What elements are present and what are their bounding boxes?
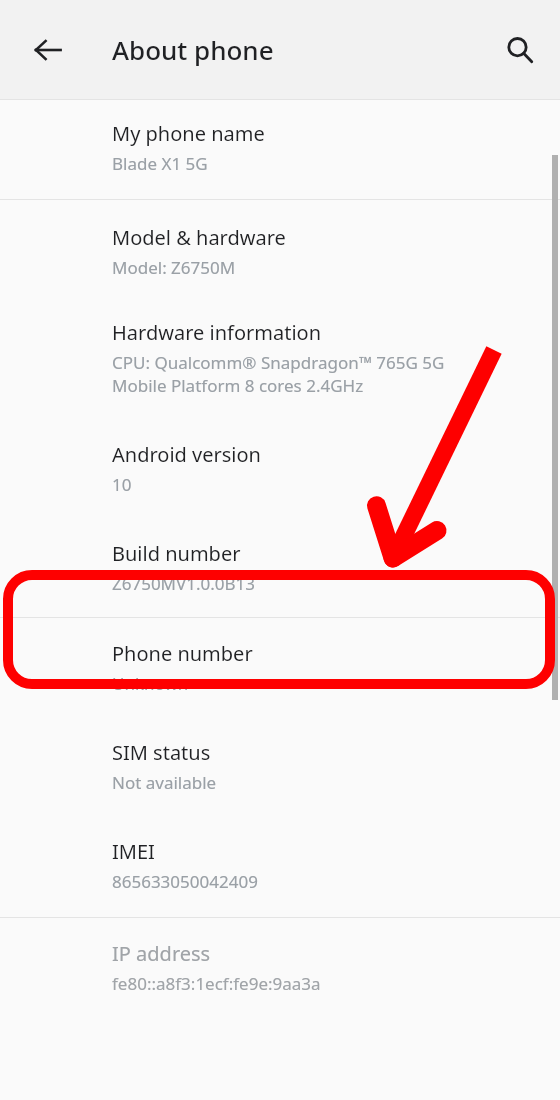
staticText: fe80::a8f3:1ecf:fe9e:9aa3a <box>112 972 321 995</box>
staticText: My phone name <box>112 120 265 147</box>
button[interactable]: Search <box>492 22 548 78</box>
staticText: CPU: Qualcomm® Snapdragon™ 765G 5G <box>112 351 445 374</box>
staticText: Phone number <box>112 640 253 667</box>
staticText: About phone <box>112 32 274 67</box>
button[interactable]: IP address <box>0 918 560 1017</box>
staticText: Model & hardware <box>112 224 286 251</box>
button[interactable]: IMEI <box>0 816 560 917</box>
staticText: Blade X1 5G <box>112 152 208 175</box>
staticText: Not available <box>112 771 217 794</box>
staticText: Model: Z6750M <box>112 256 236 279</box>
staticText: Build number <box>112 540 241 567</box>
button[interactable]: Phone number <box>0 618 560 717</box>
button[interactable]: SIM status <box>0 717 560 816</box>
button[interactable]: Build number <box>0 518 560 617</box>
button[interactable]: Hardware information <box>0 299 560 419</box>
button[interactable]: Model & hardware <box>0 200 560 299</box>
staticText: Unknown <box>112 672 189 695</box>
staticText: Mobile Platform 8 cores 2.4GHz <box>112 374 364 397</box>
button[interactable]: Back <box>20 22 76 78</box>
staticText: 10 <box>112 473 132 496</box>
staticText: SIM status <box>112 739 211 766</box>
staticText: Android version <box>112 441 261 468</box>
staticText: 865633050042409 <box>112 870 258 893</box>
staticText: IMEI <box>112 838 155 865</box>
staticText: Hardware information <box>112 319 321 346</box>
button[interactable]: Android version <box>0 419 560 518</box>
staticText: IP address <box>112 940 211 967</box>
button[interactable]: My phone name <box>0 100 560 199</box>
staticText: Z6750MV1.0.0B13 <box>112 572 256 595</box>
